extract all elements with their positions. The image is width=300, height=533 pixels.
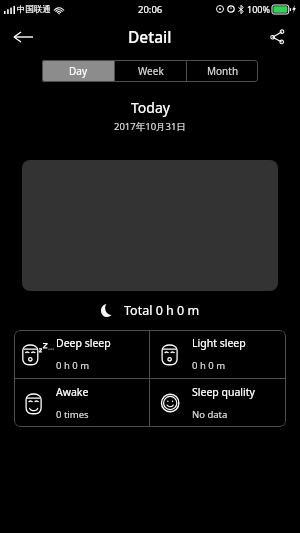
staticText: Deep sleep <box>56 336 111 350</box>
staticText: Detail <box>128 26 172 47</box>
button[interactable]: Awake <box>14 379 149 427</box>
staticText: 0 times <box>56 408 89 421</box>
staticText: 20:06 <box>138 3 163 16</box>
staticText: 100% <box>247 3 270 15</box>
staticText: 0 h 0 m <box>192 359 226 372</box>
button[interactable]: Month <box>187 60 258 82</box>
staticText: Month <box>207 64 239 78</box>
button[interactable]: Sleep quality <box>150 379 286 427</box>
button[interactable]: Share <box>254 18 300 55</box>
staticText: 中国联通 <box>17 4 51 15</box>
button[interactable]: Light sleep <box>150 330 286 378</box>
staticText: Today <box>131 98 170 117</box>
button[interactable]: Week <box>115 60 186 82</box>
staticText: Week <box>138 64 164 78</box>
staticText: Awake <box>56 385 89 399</box>
staticText: 2017年10月31日 <box>114 120 186 133</box>
staticText: Sleep quality <box>192 385 255 399</box>
staticText: Day <box>69 64 88 78</box>
staticText: Total 0 h 0 m <box>124 302 200 319</box>
button[interactable]: Back <box>0 18 46 55</box>
staticText: 0 h 0 m <box>56 359 90 372</box>
button[interactable]: Deep sleep <box>14 330 149 378</box>
staticText: Light sleep <box>192 336 246 350</box>
button[interactable]: Day <box>42 60 114 82</box>
staticText: No data <box>192 408 228 421</box>
